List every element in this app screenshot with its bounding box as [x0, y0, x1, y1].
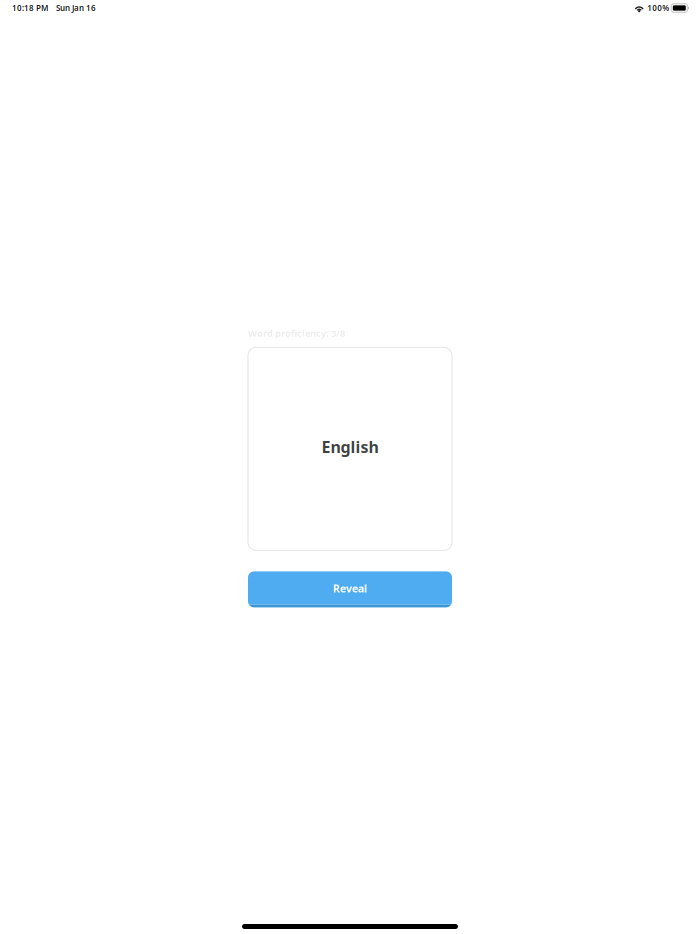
button[interactable]: English	[248, 347, 452, 550]
staticText: 100%	[647, 3, 669, 13]
button[interactable]: Reveal	[248, 571, 452, 607]
staticText: Reveal	[333, 581, 367, 595]
staticText: Word proficiency: 3/8	[248, 327, 345, 339]
staticText: 10:18 PM	[12, 3, 48, 13]
staticText: English	[321, 436, 378, 457]
staticText: Sun Jan 16	[56, 3, 96, 13]
